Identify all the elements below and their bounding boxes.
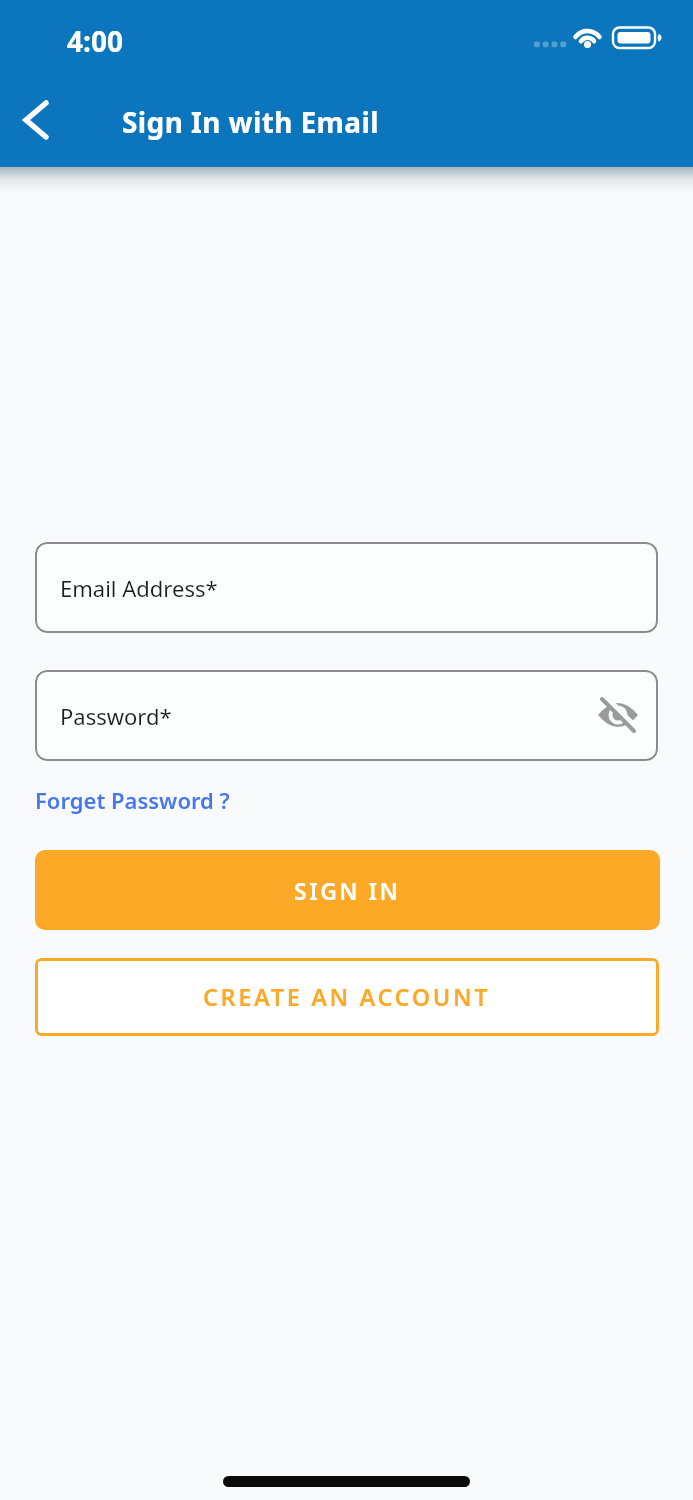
button[interactable] [598,696,638,736]
staticText: Email Address* [60,573,218,603]
staticText: CREATE AN ACCOUNT [203,981,491,1013]
button[interactable]: Forget Password ? [35,785,230,815]
button[interactable]: Email Address* [35,542,658,633]
button[interactable]: Password* [35,670,658,761]
staticText: Password* [60,701,172,731]
button[interactable]: SIGN IN [35,850,660,930]
staticText: 4:00 [67,22,123,60]
button[interactable]: CREATE AN ACCOUNT [35,958,659,1036]
button[interactable] [12,96,60,144]
staticText: SIGN IN [294,875,401,906]
staticText: Sign In with Email [122,103,379,141]
